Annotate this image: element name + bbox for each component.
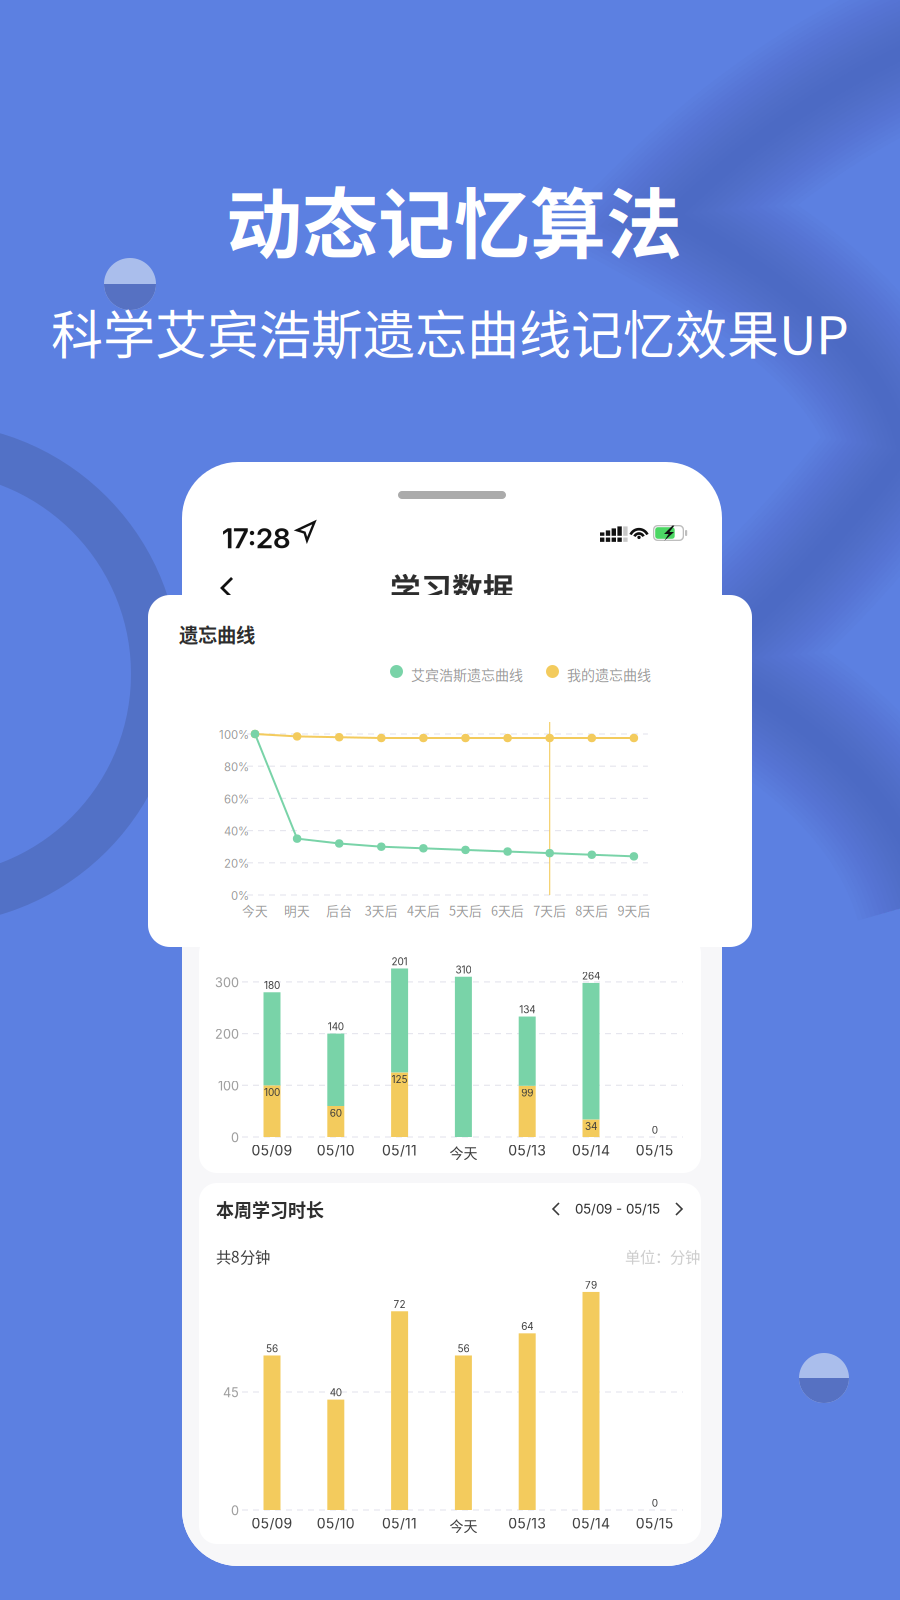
staticText: 0: [652, 1124, 658, 1136]
staticText: 共8分钟: [216, 1245, 270, 1267]
staticText: 遗忘曲线: [179, 620, 255, 648]
staticText: 56: [266, 1342, 278, 1354]
staticText: 0: [652, 1497, 658, 1509]
staticText: 79: [585, 1279, 597, 1291]
staticText: 0%: [231, 889, 249, 903]
staticText: 200: [215, 1027, 239, 1042]
staticText: 180: [264, 979, 280, 991]
staticText: 05/10: [317, 1142, 355, 1159]
staticText: 今天: [449, 1142, 477, 1162]
staticText: 56: [457, 1342, 469, 1354]
staticText: 本周学习时长: [216, 1196, 324, 1222]
staticText: 99: [521, 1087, 533, 1099]
staticText: 科学艾宾浩斯遗忘曲线记忆效果UP: [51, 294, 849, 369]
staticText: 7天后: [533, 901, 566, 919]
staticText: 134: [519, 1003, 535, 1016]
staticText: 05/11: [382, 1142, 417, 1159]
staticText: 6天后: [491, 901, 524, 919]
staticText: 45: [223, 1385, 239, 1400]
staticText: 100: [218, 1078, 239, 1094]
staticText: 0: [231, 1503, 239, 1518]
staticText: 我的遗忘曲线: [567, 664, 651, 684]
staticText: 80%: [224, 760, 249, 774]
staticText: 05/15: [636, 1142, 674, 1159]
staticText: 05/14: [572, 1515, 610, 1532]
staticText: 60: [330, 1107, 342, 1119]
staticText: 17:28: [222, 521, 291, 555]
staticText: 201: [392, 955, 408, 968]
staticText: 05/09: [251, 1142, 292, 1159]
staticText: 60%: [224, 792, 249, 806]
staticText: 05/13: [508, 1142, 546, 1159]
staticText: 140: [328, 1021, 344, 1033]
staticText: 40: [330, 1387, 342, 1399]
staticText: 0: [231, 1130, 239, 1145]
staticText: 05/13: [508, 1515, 546, 1532]
staticText: 05/09 - 05/15: [575, 1201, 660, 1217]
staticText: 学习数据: [390, 565, 514, 609]
staticText: 单位：分钟: [625, 1245, 700, 1267]
staticText: 100%: [219, 728, 249, 742]
button[interactable]: 上一周: [544, 1194, 568, 1224]
staticText: 今天: [242, 901, 268, 919]
staticText: 300: [215, 975, 239, 990]
staticText: 明天: [284, 901, 310, 919]
button[interactable]: 下一周: [667, 1194, 691, 1224]
staticText: 9天后: [617, 901, 650, 919]
staticText: 20%: [224, 857, 249, 870]
staticText: 艾宾浩斯遗忘曲线: [411, 664, 523, 684]
button[interactable]: 返回: [204, 561, 250, 615]
staticText: 264: [582, 970, 600, 982]
staticText: 8天后: [575, 901, 608, 919]
staticText: 动态记忆算法: [226, 164, 682, 274]
staticText: 05/14: [572, 1142, 610, 1159]
staticText: 后台: [326, 901, 352, 919]
staticText: 5天后: [449, 901, 482, 919]
staticText: 310: [455, 964, 471, 976]
staticText: 05/15: [636, 1515, 674, 1532]
staticText: 100: [264, 1086, 280, 1098]
staticText: 125: [392, 1073, 408, 1085]
staticText: 64: [521, 1320, 533, 1332]
staticText: 05/09: [251, 1515, 292, 1532]
staticText: 3天后: [365, 901, 398, 919]
staticText: 4天后: [407, 901, 440, 919]
staticText: 05/10: [317, 1515, 355, 1532]
staticText: 72: [394, 1298, 406, 1310]
staticText: 40%: [224, 825, 249, 838]
staticText: 今天: [449, 1515, 477, 1535]
staticText: 34: [585, 1120, 597, 1132]
staticText: 05/11: [382, 1515, 417, 1532]
